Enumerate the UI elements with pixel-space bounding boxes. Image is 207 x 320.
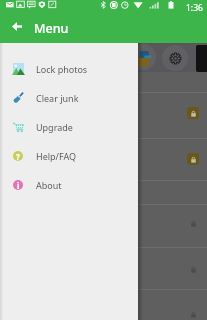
button[interactable]: Lock xyxy=(187,308,199,320)
staticText: ? xyxy=(16,151,20,161)
button[interactable]: i xyxy=(0,170,138,199)
staticText: Lock photos xyxy=(36,63,88,75)
button[interactable]: Upgrade xyxy=(0,112,138,141)
button[interactable]: Clear junk xyxy=(0,83,138,112)
button[interactable]: Lock photos xyxy=(0,54,138,83)
button[interactable]: Lock xyxy=(187,153,199,165)
staticText: Upgrade xyxy=(36,121,73,133)
button[interactable]: Lock xyxy=(187,263,199,275)
staticText: 1:36 xyxy=(186,2,203,14)
button[interactable]: Back xyxy=(0,14,34,43)
staticText: Clear junk xyxy=(36,92,79,104)
staticText: Menu xyxy=(34,20,69,37)
button[interactable]: Lock xyxy=(187,107,199,119)
button[interactable]: ? xyxy=(0,141,138,170)
button[interactable]: Settings xyxy=(162,45,188,71)
staticText: Help/FAQ xyxy=(36,150,77,162)
staticText: About xyxy=(36,179,62,191)
button[interactable]: Lock xyxy=(187,217,199,229)
staticText: i xyxy=(17,180,20,190)
